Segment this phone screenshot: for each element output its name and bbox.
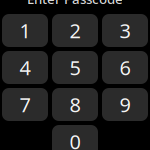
staticText: 1 [19,17,30,44]
staticText: 3 [119,17,130,44]
staticText: 6 [119,54,130,81]
staticText: 4 [19,54,30,81]
button[interactable]: 3 [102,14,148,47]
button[interactable]: 6 [102,51,148,84]
staticText: 9 [119,91,130,118]
staticText: 8 [69,91,80,118]
button[interactable]: 0 [52,125,98,150]
staticText: 7 [19,91,30,118]
staticText: Enter Passcode [27,0,123,8]
button[interactable]: 2 [52,14,98,47]
button[interactable]: 7 [2,88,48,121]
button[interactable]: 1 [2,14,48,47]
staticText: 0 [69,128,80,150]
button[interactable]: 4 [2,51,48,84]
button[interactable]: 9 [102,88,148,121]
staticText: 5 [69,54,80,81]
button[interactable]: 5 [52,51,98,84]
staticText: 2 [69,17,80,44]
button[interactable]: 8 [52,88,98,121]
